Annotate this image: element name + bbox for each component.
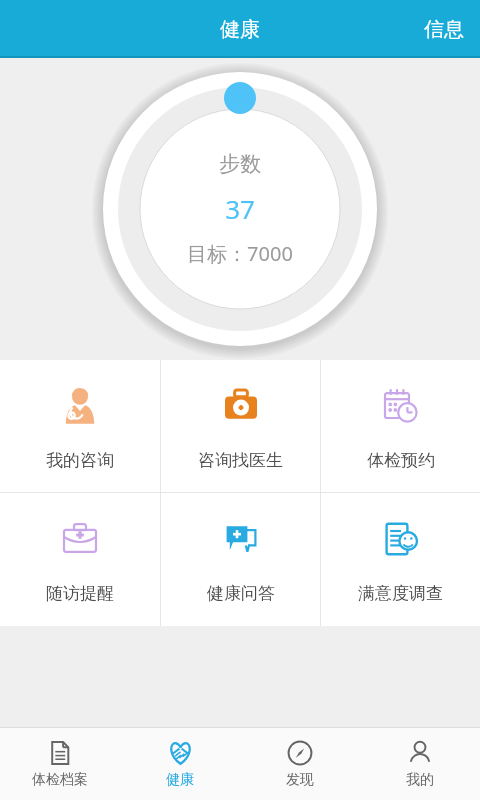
staticText: 信息: [424, 17, 464, 42]
button[interactable]: Step counter: [99, 68, 381, 350]
staticText: 37: [225, 191, 255, 226]
staticText: 随访提醒: [46, 583, 114, 604]
button[interactable]: 健康问答: [161, 493, 320, 626]
staticText: 发现: [286, 771, 314, 789]
staticText: 我的咨询: [46, 450, 114, 471]
button[interactable]: 我的咨询: [0, 360, 160, 492]
button[interactable]: 体检预约: [321, 360, 480, 492]
button[interactable]: 满意度调查: [321, 493, 480, 626]
button[interactable]: 发现: [240, 728, 360, 800]
staticText: 满意度调查: [358, 583, 443, 604]
staticText: 我的: [406, 771, 434, 789]
button[interactable]: 健康: [120, 728, 240, 800]
button[interactable]: 信息: [408, 5, 480, 54]
button[interactable]: 咨询找医生: [161, 360, 320, 492]
staticText: 健康: [220, 17, 260, 42]
staticText: 体检预约: [367, 450, 435, 471]
button[interactable]: 体检档案: [0, 728, 120, 800]
staticText: 目标：7000: [187, 240, 293, 267]
staticText: 咨询找医生: [198, 450, 283, 471]
staticText: 健康问答: [207, 583, 275, 604]
staticText: 健康: [166, 771, 194, 789]
staticText: 步数: [219, 151, 261, 177]
button[interactable]: 我的: [360, 728, 480, 800]
staticText: 体检档案: [32, 771, 88, 789]
button[interactable]: 随访提醒: [0, 493, 160, 626]
